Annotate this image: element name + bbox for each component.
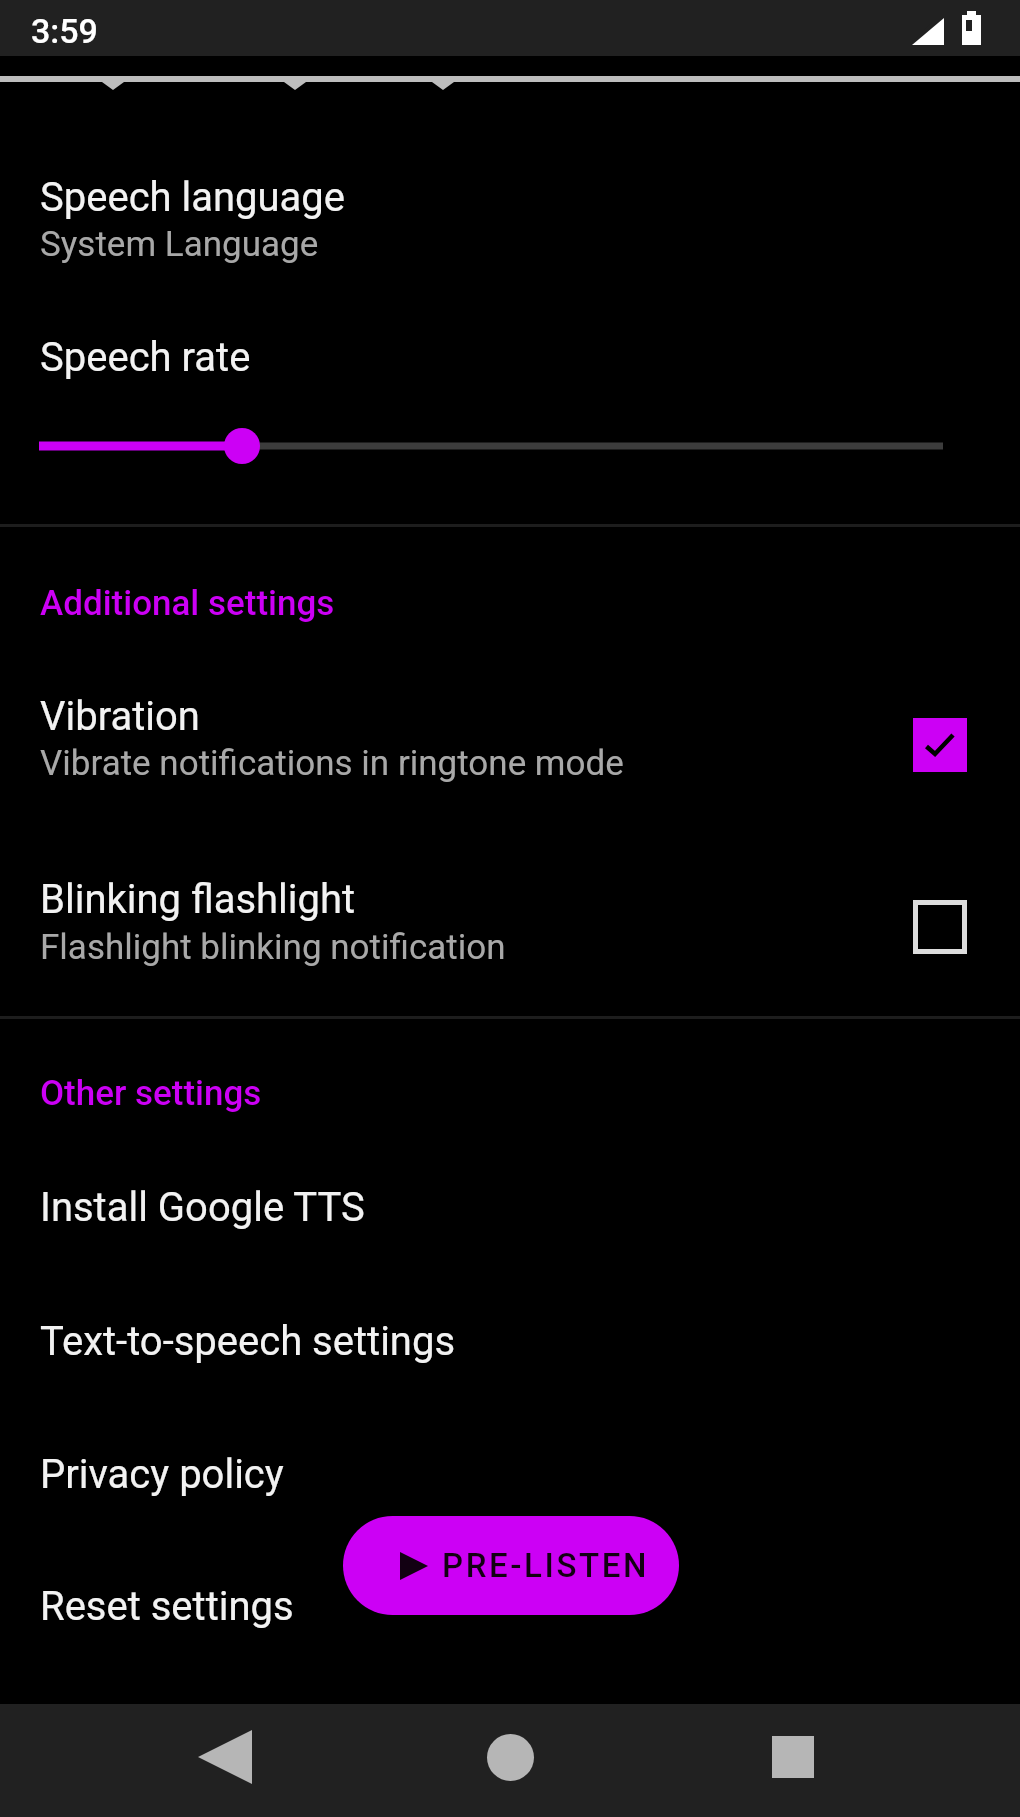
button[interactable]: Recent apps [753, 1717, 833, 1797]
button[interactable]: Reset settings [0, 1575, 1020, 1685]
button[interactable]: Unchecked [913, 900, 967, 954]
staticText: Blinking flashlight [40, 876, 356, 923]
button[interactable]: Checked [913, 718, 967, 772]
staticText: Reset settings [40, 1583, 294, 1630]
staticText: System Language [40, 224, 319, 265]
staticText: Speech language [40, 174, 346, 221]
staticText: Additional settings [40, 583, 335, 624]
button[interactable]: Back [185, 1717, 265, 1797]
button[interactable]: Speech rate [0, 425, 1020, 467]
button[interactable]: Blinking flashlight [0, 868, 1020, 988]
button[interactable]: Vibration [0, 685, 1020, 805]
staticText: PRE-LISTEN [442, 1546, 650, 1585]
button[interactable]: Text-to-speech settings [0, 1310, 1020, 1420]
button[interactable]: PRE-LISTEN [343, 1516, 679, 1615]
staticText: Other settings [40, 1073, 262, 1114]
button[interactable]: Speech language [0, 150, 1020, 290]
button[interactable]: Privacy policy [0, 1443, 1020, 1553]
staticText: Text-to-speech settings [40, 1318, 456, 1365]
staticText: Vibrate notifications in ringtone mode [40, 743, 624, 784]
staticText: Flashlight blinking notification [40, 927, 506, 968]
staticText: Privacy policy [40, 1451, 284, 1498]
button[interactable]: Install Google TTS [0, 1176, 1020, 1286]
staticText: Speech rate [40, 334, 251, 381]
staticText: 3:59 [31, 11, 98, 51]
button[interactable]: Home [470, 1717, 550, 1797]
staticText: Vibration [40, 693, 200, 740]
button[interactable]: Speech rate [0, 310, 1020, 480]
staticText: Install Google TTS [40, 1184, 365, 1231]
